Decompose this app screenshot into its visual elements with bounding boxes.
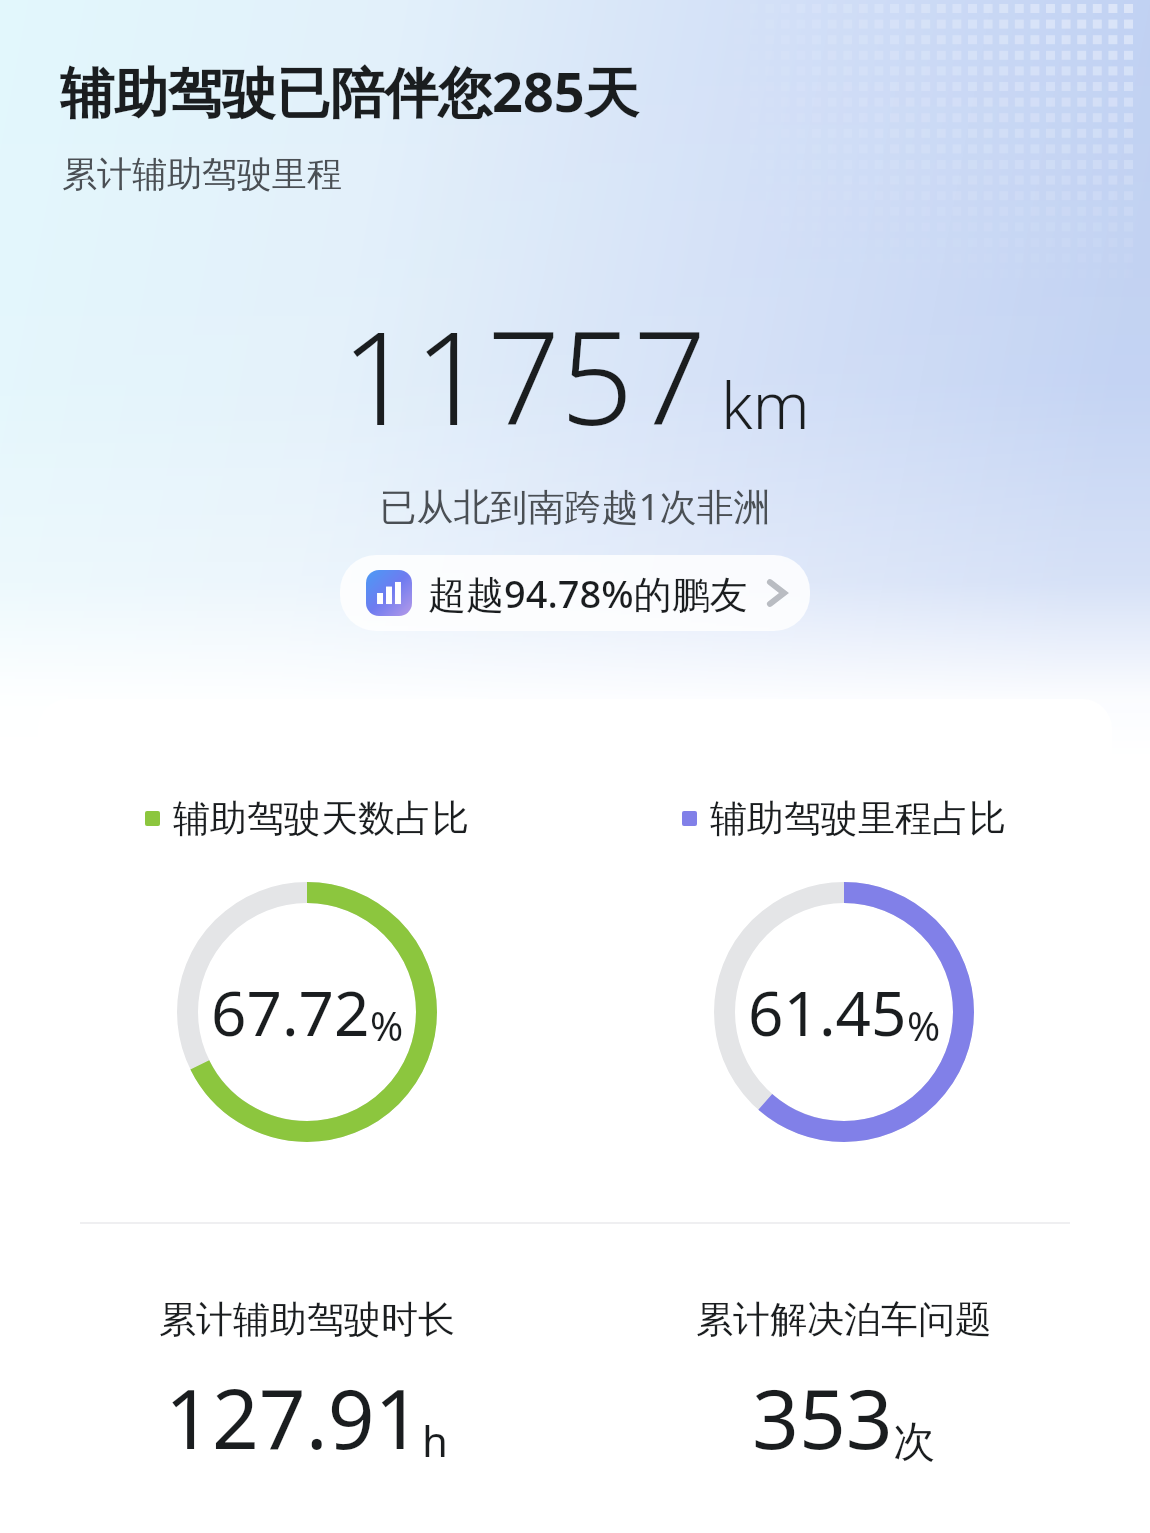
staticText: 次 [893, 1416, 935, 1469]
staticText: % [370, 998, 404, 1052]
staticText: 累计辅助驾驶时长 [159, 1296, 455, 1343]
button[interactable]: 超越94.78%的鹏友 [340, 555, 810, 631]
staticText: 353 [752, 1361, 893, 1473]
staticText: 127.91 [165, 1361, 422, 1473]
staticText: 累计辅助驾驶里程 [62, 152, 342, 196]
staticText: 67.72 [211, 970, 370, 1054]
staticText: 61.45 [748, 970, 907, 1054]
staticText: 已从北到南跨越1次非洲 [0, 480, 1150, 531]
staticText: 辅助驾驶已陪伴您285天 [60, 54, 639, 128]
staticText: km [721, 361, 810, 448]
staticText: 超越94.78%的鹏友 [428, 567, 748, 619]
staticText: 辅助驾驶天数占比 [173, 795, 469, 842]
staticText: 11757 [341, 288, 707, 462]
staticText: % [907, 998, 941, 1052]
staticText: 辅助驾驶里程占比 [710, 795, 1006, 842]
staticText: 累计解决泊车问题 [696, 1296, 992, 1343]
staticText: h [422, 1412, 448, 1469]
